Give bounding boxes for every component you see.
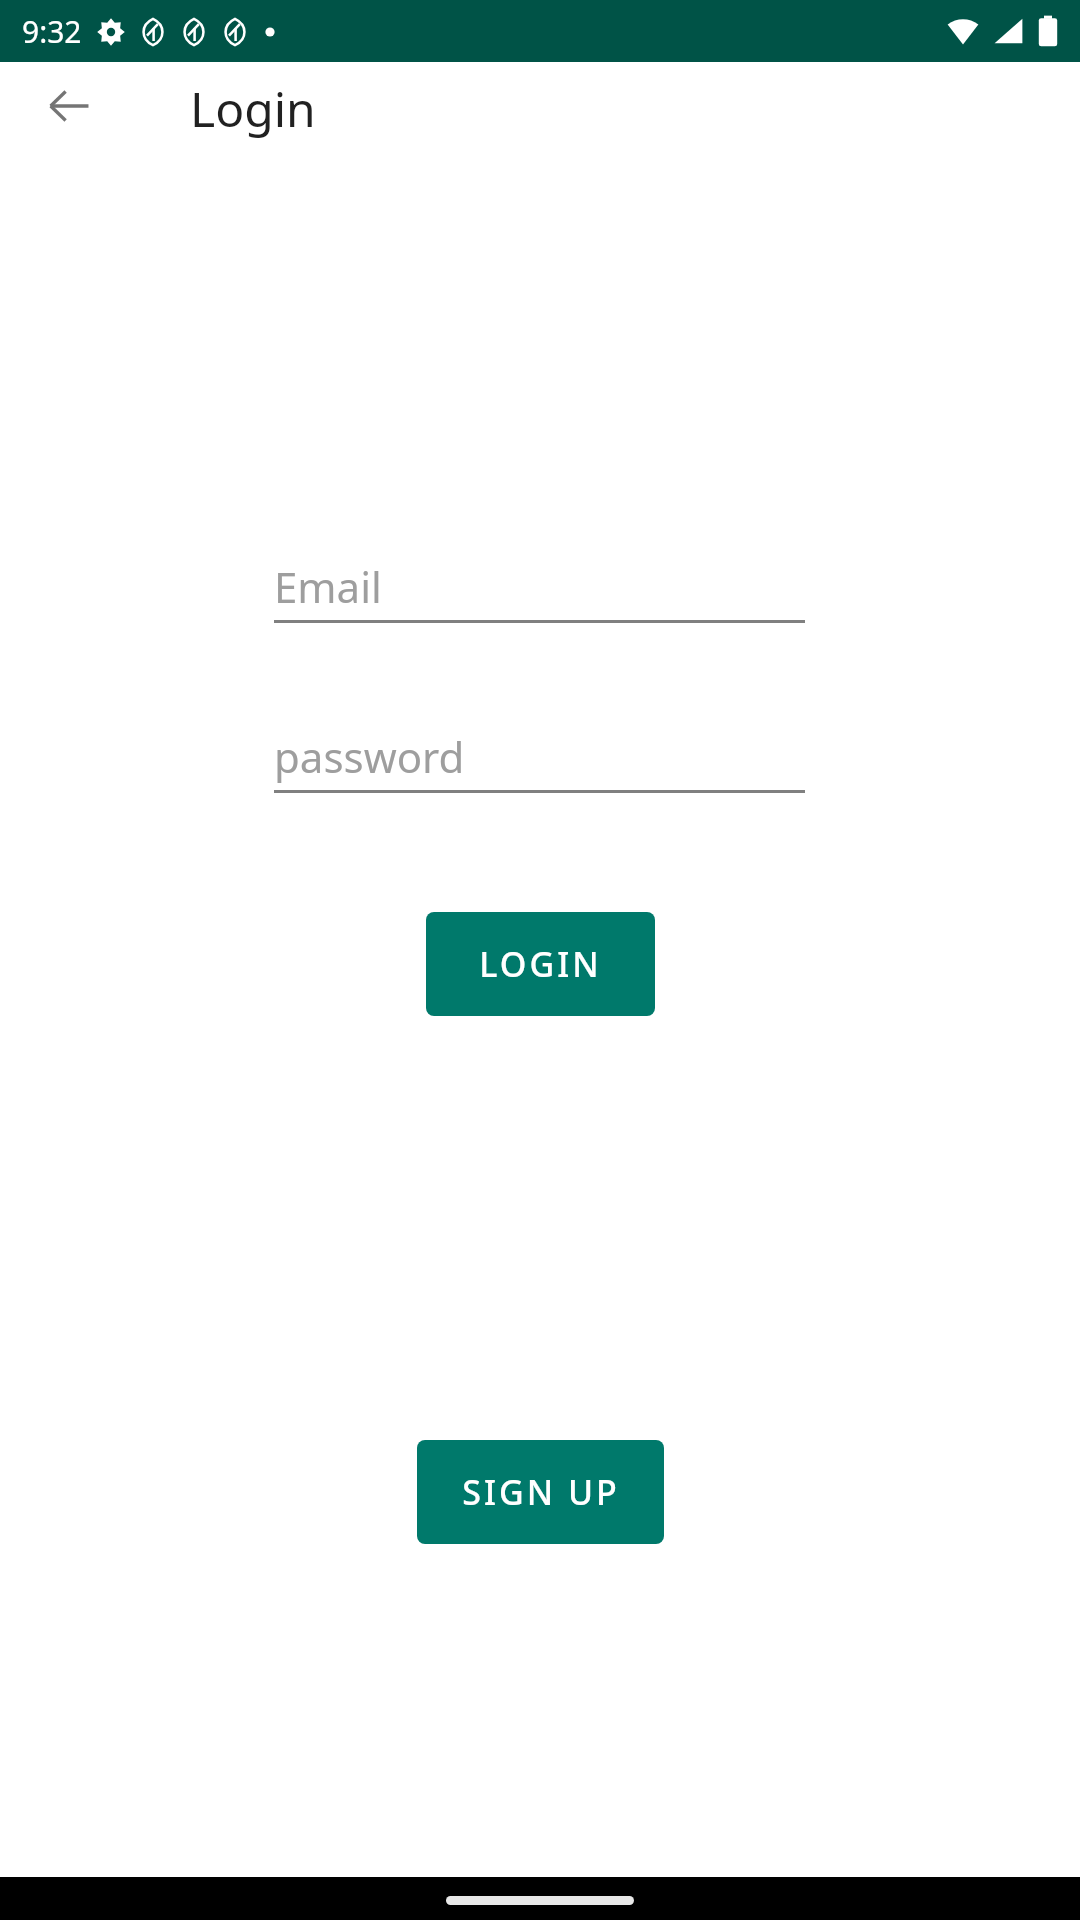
staticText: LOGIN — [479, 941, 602, 987]
button[interactable]: password — [0, 728, 1080, 794]
staticText: SIGN UP — [462, 1469, 620, 1515]
button[interactable]: Email — [0, 558, 1080, 624]
staticText: 9:32 — [22, 11, 82, 52]
staticText: Login — [190, 76, 316, 141]
button[interactable]: Back — [26, 62, 114, 150]
staticText: Email — [274, 558, 382, 615]
button[interactable]: SIGN UP — [417, 1440, 664, 1544]
button[interactable]: LOGIN — [426, 912, 655, 1016]
staticText: password — [274, 728, 465, 785]
